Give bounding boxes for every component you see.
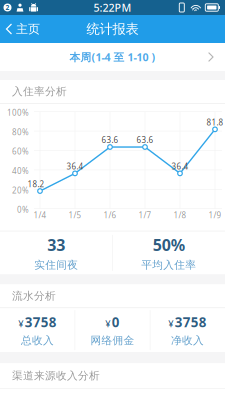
staticText: 81.8 xyxy=(206,117,223,128)
staticText: 统计报表 xyxy=(86,21,138,37)
staticText: 1/5 xyxy=(68,210,81,220)
staticText: 入住率分析 xyxy=(12,85,67,98)
staticText: ¥ xyxy=(168,317,173,330)
staticText: 2 xyxy=(5,3,9,12)
staticText: 40% xyxy=(12,166,29,176)
button[interactable]: 本周(1-4 至 1-10 ) xyxy=(0,43,225,71)
staticText: 1/6 xyxy=(103,210,116,220)
staticText: 100% xyxy=(7,107,29,118)
staticText: 1/4 xyxy=(33,210,46,220)
staticText: 1/7 xyxy=(138,210,151,220)
staticText: 渠道来源收入分析 xyxy=(12,369,100,382)
staticText: 50% xyxy=(153,234,185,255)
staticText: 本周(1-4 至 1-10 ) xyxy=(69,50,155,64)
staticText: 63.6 xyxy=(136,135,153,145)
staticText: ¥ xyxy=(105,317,110,330)
staticText: 0% xyxy=(17,204,29,215)
staticText: 实住间夜 xyxy=(34,258,78,272)
staticText: 18.2 xyxy=(27,179,44,189)
staticText: 60% xyxy=(12,146,29,157)
staticText: 1/8 xyxy=(173,210,186,220)
staticText: 平均入住率 xyxy=(141,258,196,272)
staticText: 网络佣金 xyxy=(90,334,134,347)
staticText: 80% xyxy=(12,127,29,137)
staticText: 5:22PM xyxy=(93,0,131,15)
staticText: ¥ xyxy=(18,317,23,330)
staticText: 63.6 xyxy=(101,135,118,145)
staticText: 总收入 xyxy=(21,334,54,347)
button[interactable]: 主页 xyxy=(0,15,48,43)
staticText: 0 xyxy=(112,313,120,331)
staticText: 36.4 xyxy=(171,161,188,172)
staticText: 流水分析 xyxy=(12,289,56,302)
staticText: 3758 xyxy=(175,313,207,331)
staticText: 20% xyxy=(12,185,29,196)
staticText: 1/9 xyxy=(208,210,221,220)
staticText: 33 xyxy=(47,234,65,255)
staticText: 36.4 xyxy=(66,161,83,172)
staticText: 主页 xyxy=(16,22,40,36)
staticText: 3758 xyxy=(25,313,57,331)
staticText: 净收入 xyxy=(171,334,204,347)
